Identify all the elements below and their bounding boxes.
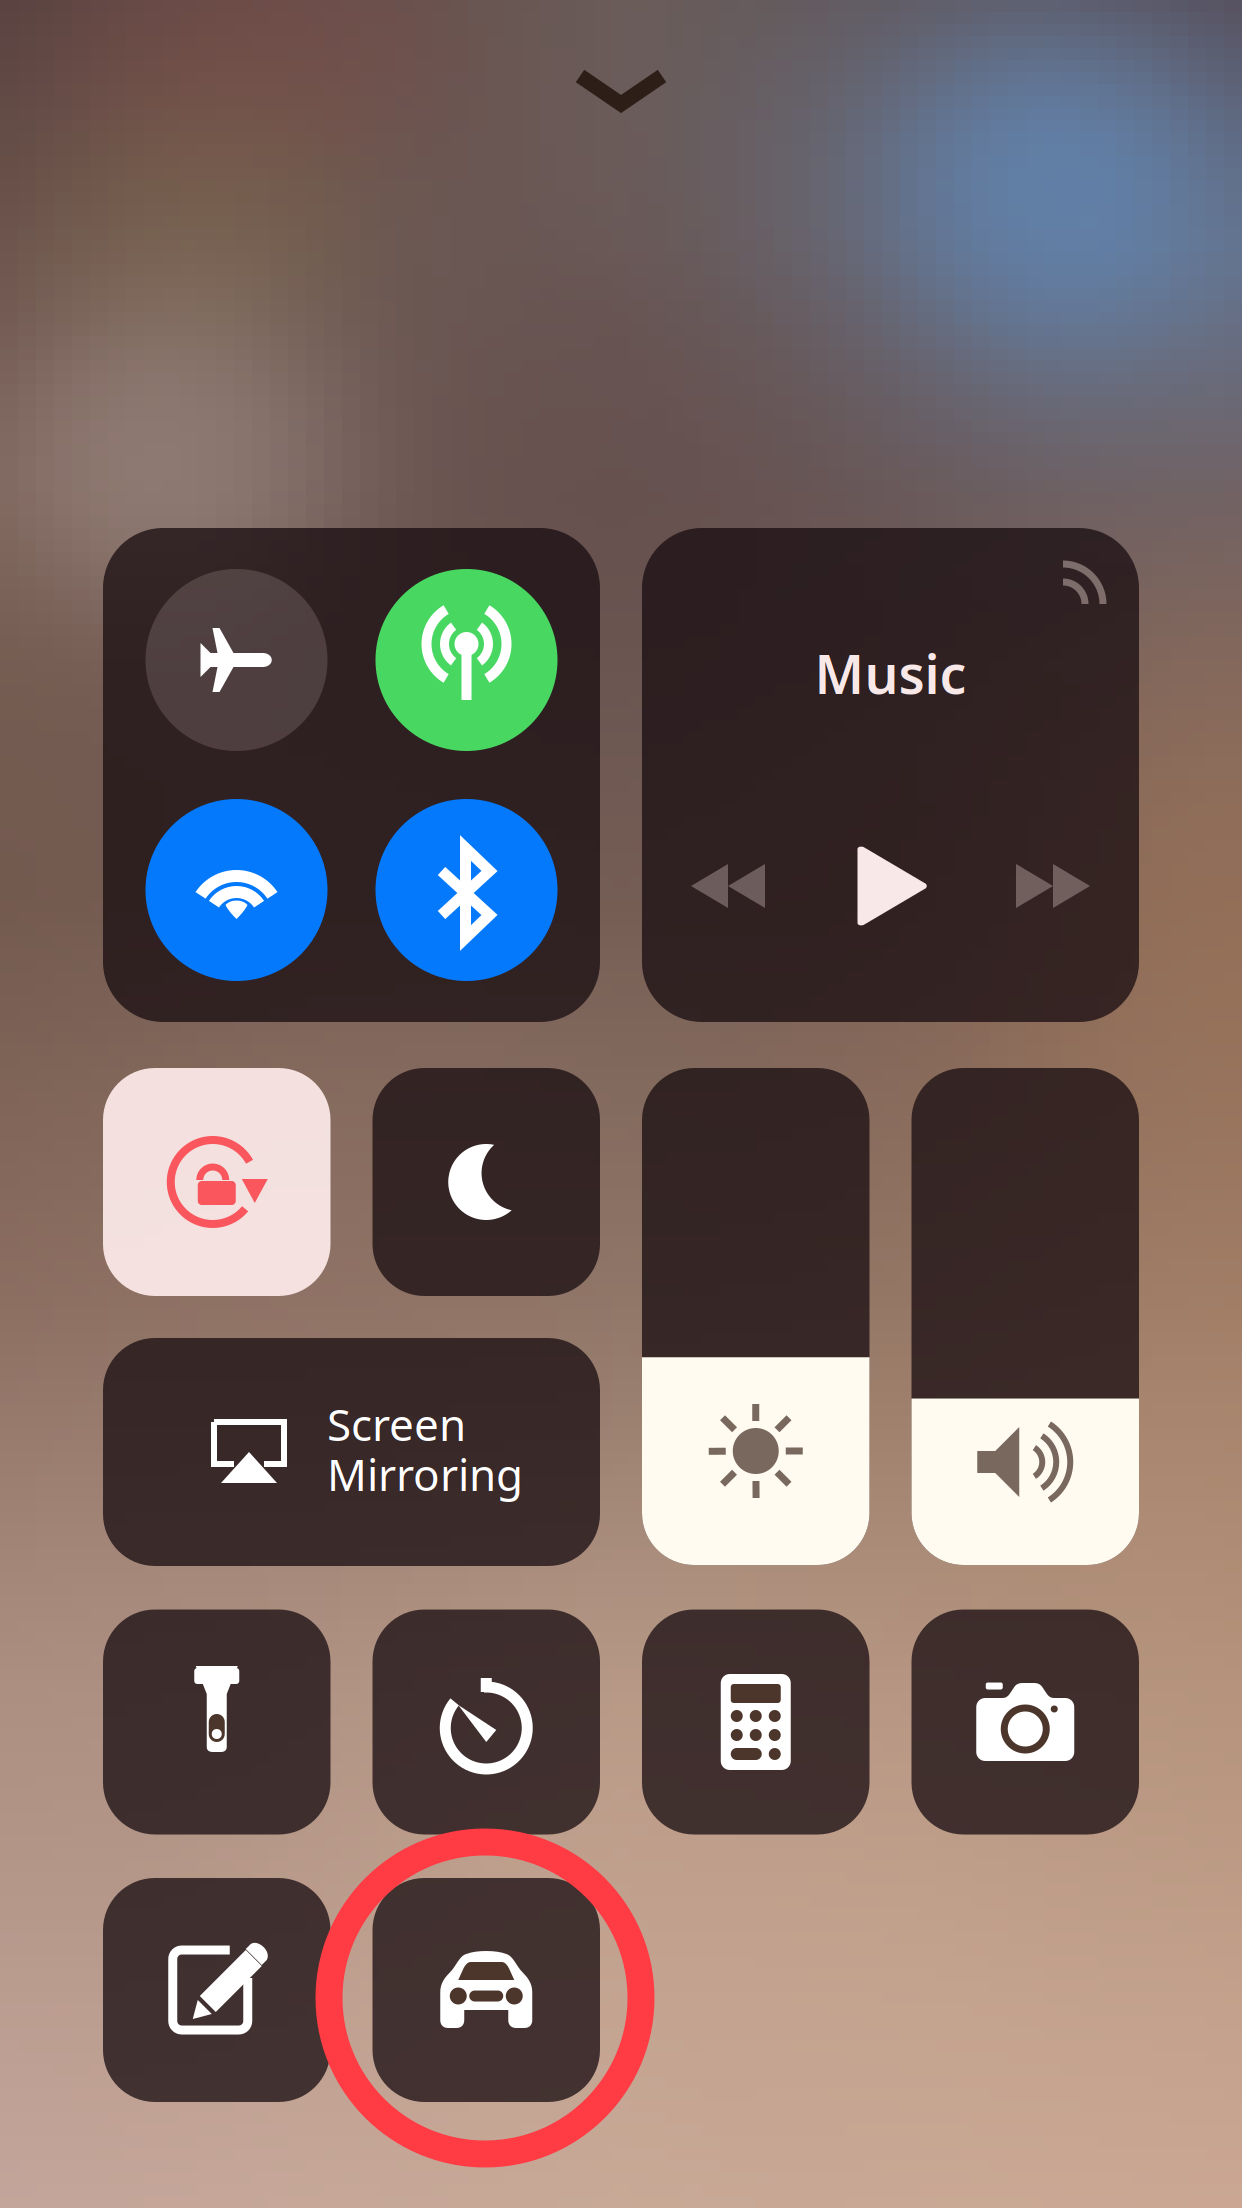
button[interactable]: Do Not Disturb While Driving (372, 1878, 600, 2102)
button[interactable]: Connectivity (103, 528, 600, 1022)
button[interactable]: Do Not Disturb (372, 1068, 600, 1296)
button[interactable]: Notes (103, 1878, 330, 2102)
button[interactable]: Timer (372, 1609, 600, 1834)
button[interactable]: Close Control Center (572, 68, 670, 112)
button[interactable]: Volume (911, 1068, 1139, 1565)
button[interactable]: Brightness (642, 1068, 869, 1565)
button[interactable]: Flashlight (103, 1609, 330, 1834)
staticText: Mirroring (327, 1445, 523, 1503)
button[interactable]: Calculator (642, 1609, 869, 1834)
button[interactable]: Now Playing, Music (642, 528, 1139, 1022)
staticText: Screen (327, 1395, 466, 1453)
button[interactable]: Screen Mirroring (103, 1338, 600, 1566)
staticText: Music (814, 638, 966, 709)
button[interactable]: Camera (911, 1609, 1139, 1834)
button[interactable]: Portrait Orientation Lock (103, 1068, 330, 1296)
